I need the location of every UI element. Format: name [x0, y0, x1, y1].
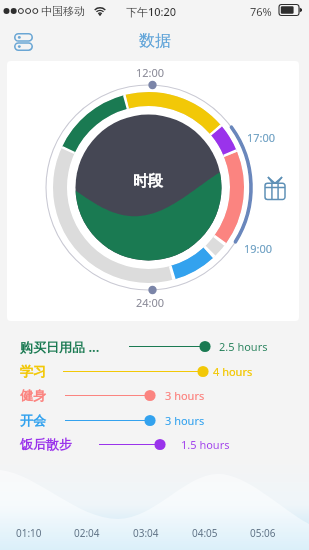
- staticText: 1.5 hours: [181, 437, 230, 452]
- staticText: 下午10:20: [126, 4, 177, 19]
- button[interactable]: 学习: [0, 359, 309, 383]
- button[interactable]: 购买日用品 ...: [0, 334, 309, 358]
- button[interactable]: 饭后散步: [0, 432, 309, 456]
- staticText: 12:00: [136, 65, 165, 80]
- staticText: 饭后散步: [20, 436, 72, 452]
- staticText: 开会: [20, 412, 46, 428]
- staticText: 03:04: [133, 526, 159, 540]
- staticText: 02:04: [74, 526, 100, 540]
- staticText: 01:10: [16, 526, 42, 540]
- staticText: 健身: [20, 387, 46, 403]
- button[interactable]: Gift: [264, 175, 286, 201]
- staticText: 中国移动: [41, 4, 85, 18]
- button[interactable]: 健身: [0, 383, 309, 407]
- staticText: 购买日用品 ...: [20, 338, 100, 356]
- staticText: 3 hours: [165, 388, 205, 403]
- button[interactable]: 开会: [0, 408, 309, 432]
- staticText: 4 hours: [213, 364, 253, 379]
- staticText: 05:06: [250, 526, 276, 540]
- staticText: 17:00: [247, 130, 276, 145]
- staticText: 19:00: [244, 241, 273, 256]
- staticText: 76%: [250, 4, 272, 19]
- staticText: 2.5 hours: [219, 339, 268, 354]
- button[interactable]: Settings: [8, 27, 38, 57]
- staticText: 时段: [133, 172, 163, 191]
- staticText: 学习: [20, 363, 46, 379]
- staticText: 04:05: [192, 526, 218, 540]
- staticText: 24:00: [136, 295, 165, 310]
- staticText: 数据: [139, 31, 171, 51]
- staticText: 3 hours: [165, 413, 205, 428]
